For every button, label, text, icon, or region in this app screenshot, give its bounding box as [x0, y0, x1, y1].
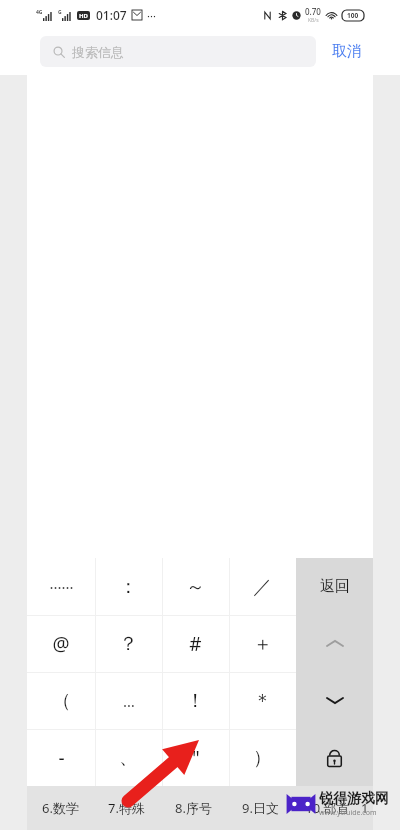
- staticText: 返回: [320, 577, 350, 596]
- button[interactable]: ": [162, 729, 229, 786]
- staticText: G: [58, 9, 62, 16]
- staticText: ？: [119, 632, 138, 656]
- staticText: ": [192, 745, 200, 771]
- staticText: 6.数学: [42, 799, 79, 817]
- staticText: 01:07: [96, 7, 127, 23]
- staticText: …: [123, 691, 135, 711]
- staticText: 7.特殊: [108, 799, 145, 817]
- staticText: ···: [147, 8, 156, 23]
- button[interactable]: -: [27, 729, 95, 786]
- button[interactable]: Page up: [296, 615, 373, 672]
- button[interactable]: ＋: [229, 615, 296, 672]
- staticText: 搜索信息: [72, 44, 124, 60]
- button[interactable]: ······: [27, 558, 95, 615]
- button[interactable]: （: [27, 672, 95, 729]
- staticText: ：: [119, 575, 138, 599]
- button[interactable]: 返回: [296, 558, 373, 615]
- staticText: 锐得游戏网: [319, 790, 389, 808]
- button[interactable]: 10.部首: [294, 786, 361, 830]
- staticText: ～: [186, 575, 205, 599]
- button[interactable]: ＊: [229, 672, 296, 729]
- staticText: @: [52, 631, 70, 657]
- button[interactable]: 8.序号: [160, 786, 227, 830]
- button[interactable]: 取消: [330, 38, 364, 65]
- staticText: 0.70: [305, 6, 321, 17]
- staticText: ······: [49, 577, 74, 597]
- staticText: HD: [79, 12, 88, 20]
- staticText: 、: [119, 746, 138, 770]
- button[interactable]: ：: [95, 558, 162, 615]
- button[interactable]: ／: [229, 558, 296, 615]
- staticText: KB/s: [308, 17, 319, 24]
- button[interactable]: 搜索信息: [40, 36, 316, 67]
- button[interactable]: …: [95, 672, 162, 729]
- button[interactable]: Page down: [296, 672, 373, 729]
- staticText: 取消: [332, 42, 362, 61]
- staticText: 10.部首: [305, 799, 350, 817]
- staticText: 4G: [36, 9, 43, 16]
- staticText: ＊: [253, 689, 272, 713]
- staticText: ／: [253, 575, 272, 599]
- staticText: ）: [253, 746, 272, 770]
- button[interactable]: 7.特殊: [93, 786, 160, 830]
- button[interactable]: ？: [95, 615, 162, 672]
- staticText: -: [58, 745, 65, 771]
- button[interactable]: ）: [229, 729, 296, 786]
- button[interactable]: 6.数学: [27, 786, 93, 830]
- button[interactable]: Lock: [296, 729, 373, 786]
- staticText: 100: [347, 11, 359, 20]
- button[interactable]: 、: [95, 729, 162, 786]
- button[interactable]: #: [162, 615, 229, 672]
- staticText: 1: [361, 799, 369, 817]
- staticText: 8.序号: [175, 799, 212, 817]
- staticText: （: [52, 689, 71, 713]
- staticText: 9.日文: [242, 799, 279, 817]
- staticText: ！: [186, 689, 205, 713]
- staticText: ＋: [253, 632, 272, 656]
- button[interactable]: ～: [162, 558, 229, 615]
- button[interactable]: @: [27, 615, 95, 672]
- button[interactable]: 9.日文: [227, 786, 294, 830]
- button[interactable]: 1: [361, 786, 373, 830]
- button[interactable]: ！: [162, 672, 229, 729]
- staticText: #: [189, 631, 202, 657]
- staticText: www.ytruide.com: [319, 808, 377, 818]
